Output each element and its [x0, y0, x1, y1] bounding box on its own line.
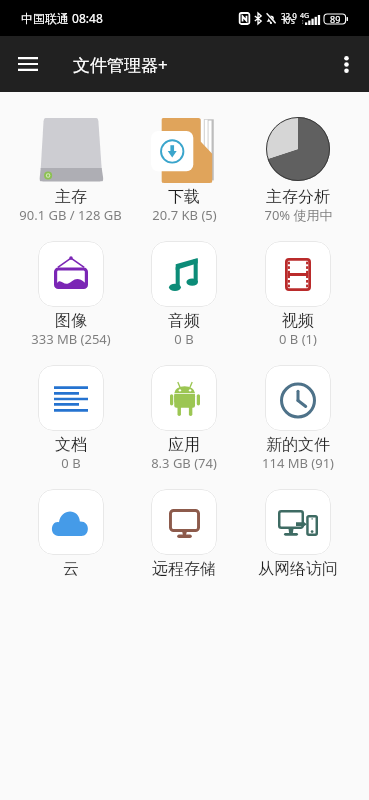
staticText: 主存分析 — [266, 187, 330, 207]
staticText: 33.9 — [281, 11, 297, 22]
staticText: 新的文件 — [266, 435, 330, 455]
staticText: 远程存储 — [152, 559, 216, 579]
staticText: 0 B — [174, 330, 194, 348]
staticText: 主存 — [55, 187, 87, 207]
button[interactable]: 主存 — [14, 117, 127, 241]
staticText: 从网络访问 — [258, 559, 338, 579]
staticText: 下载 — [168, 187, 200, 207]
button[interactable]: Navigation menu — [7, 43, 49, 85]
button[interactable]: 应用 — [127, 365, 241, 489]
staticText: 视频 — [282, 311, 314, 331]
button[interactable]: More options — [325, 43, 367, 85]
staticText: 文档 — [55, 435, 87, 455]
staticText: 音频 — [168, 311, 200, 331]
staticText: 20.7 KB (5) — [152, 206, 217, 224]
staticText: 114 MB (91) — [262, 454, 334, 472]
button[interactable]: 图像 — [14, 241, 127, 365]
staticText: 4G — [300, 11, 310, 21]
button[interactable]: 文档 — [14, 365, 127, 489]
staticText: 0 B — [61, 454, 81, 472]
button[interactable]: 音频 — [127, 241, 241, 365]
staticText: 0 B (1) — [279, 330, 317, 348]
staticText: 应用 — [168, 435, 200, 455]
button[interactable]: 视频 — [241, 241, 355, 365]
button[interactable]: 新的文件 — [241, 365, 355, 489]
staticText: 云 — [63, 559, 79, 579]
staticText: 333 MB (254) — [31, 330, 111, 348]
staticText: K/s — [283, 15, 295, 26]
button[interactable]: 远程存储 — [127, 489, 241, 613]
button[interactable]: 从网络访问 — [241, 489, 355, 613]
button[interactable]: 主存分析 — [241, 117, 355, 241]
staticText: 89 — [330, 13, 341, 25]
staticText: 70% 使用中 — [264, 206, 333, 224]
staticText: 90.1 GB / 128 GB — [19, 206, 122, 224]
staticText: 8.3 GB (74) — [151, 454, 217, 472]
button[interactable]: 下载 — [127, 117, 241, 241]
staticText: 中国联通 08:48 — [21, 10, 103, 26]
staticText: 文件管理器+ — [73, 53, 168, 76]
staticText: 图像 — [55, 311, 87, 331]
button[interactable]: 云 — [14, 489, 127, 613]
